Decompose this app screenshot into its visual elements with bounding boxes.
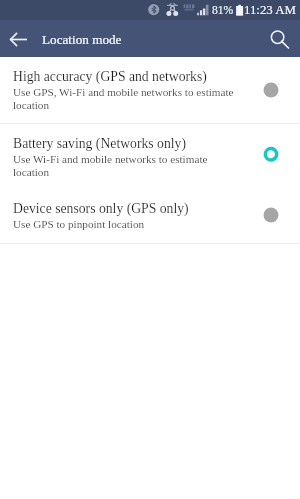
button[interactable]: Battery saving (Networks only) [0,124,300,188]
staticText: Use GPS, Wi-Fi and mobile networks to es… [13,86,235,112]
staticText: Use GPS to pinpoint location [13,218,145,230]
staticText: 81% [212,4,234,17]
button[interactable]: Device sensors only (GPS only) [0,188,300,243]
staticText: Battery saving (Networks only) [13,136,186,151]
staticText: High accuracy (GPS and networks) [13,69,207,84]
button[interactable]: Back [2,20,35,53]
staticText: Device sensors only (GPS only) [13,201,189,216]
button[interactable]: High accuracy (GPS and networks) [0,57,300,123]
staticText: Location mode [42,32,122,47]
staticText: 11:23 AM [244,3,296,17]
button[interactable]: Search [266,22,300,56]
staticText: Use Wi-Fi and mobile networks to estimat… [13,153,235,179]
